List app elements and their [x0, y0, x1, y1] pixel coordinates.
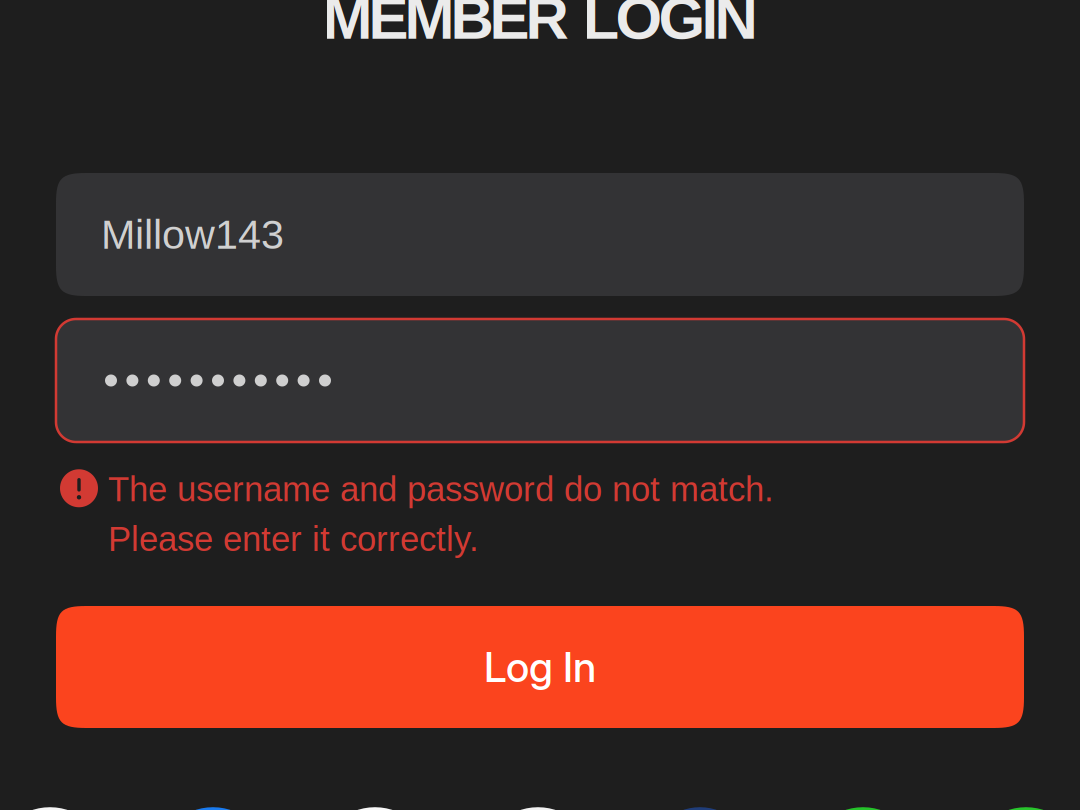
button[interactable]: Millow143 — [56, 173, 1024, 296]
staticText: Log In — [484, 642, 596, 692]
staticText: Millow143 — [101, 211, 284, 258]
button[interactable] — [56, 319, 1024, 442]
staticText: Please enter it correctly. — [108, 519, 479, 558]
button[interactable]: Log In — [56, 606, 1024, 728]
staticText: MEMBER — [322, 0, 568, 51]
staticText: The username and password do not match. — [108, 470, 774, 508]
staticText: LOGIN — [582, 0, 757, 51]
